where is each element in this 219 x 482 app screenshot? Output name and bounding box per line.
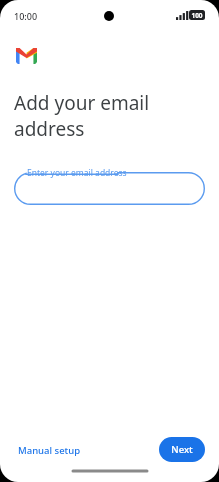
other: Gmail bbox=[16, 48, 37, 64]
button[interactable]: Manual setup bbox=[14, 440, 85, 461]
staticText: Enter your email address bbox=[27, 167, 127, 179]
staticText: Add your email address bbox=[14, 90, 204, 141]
staticText: Manual setup bbox=[18, 444, 81, 457]
staticText: 10:00 bbox=[14, 10, 38, 22]
button[interactable] bbox=[14, 172, 205, 205]
button[interactable]: Next bbox=[159, 437, 205, 462]
staticText: Next bbox=[171, 443, 193, 456]
staticText: 100 bbox=[191, 11, 203, 20]
